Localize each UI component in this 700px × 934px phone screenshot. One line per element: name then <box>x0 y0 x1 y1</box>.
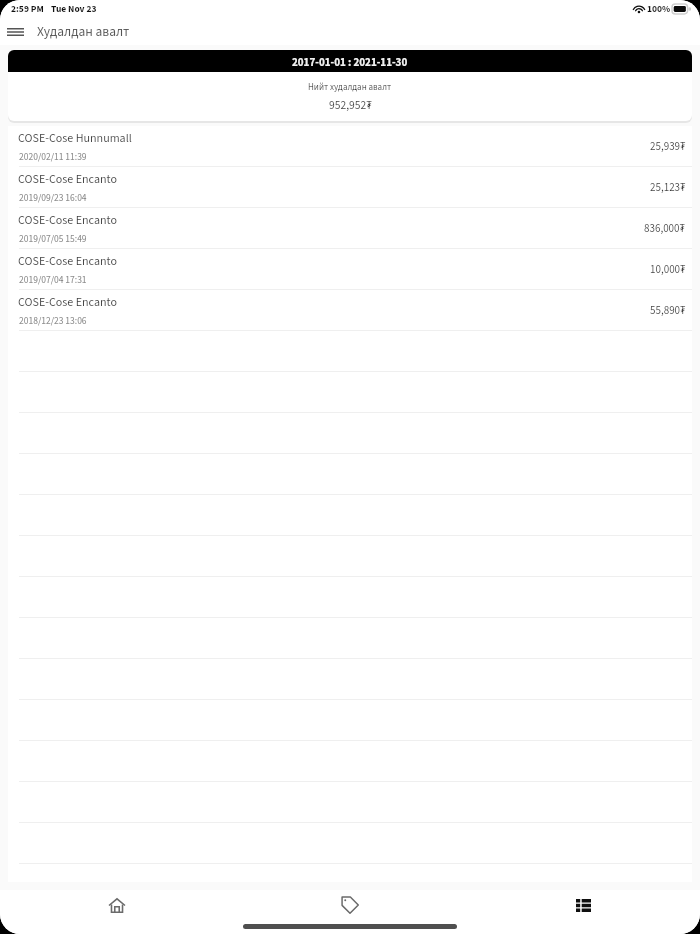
staticText: 2019/07/04 17:31 <box>19 273 87 287</box>
button[interactable]: Open navigation menu <box>0 18 30 45</box>
staticText: Tue Nov 23 <box>51 2 97 16</box>
staticText: COSE-Cose Encanto <box>18 212 117 229</box>
button[interactable]: COSE-Cose Encanto <box>8 249 692 290</box>
staticText: 25,123₮ <box>650 180 686 196</box>
staticText: 2020/02/11 11:39 <box>19 150 87 164</box>
staticText: Худалдан авалт <box>37 22 130 41</box>
staticText: 952,952₮ <box>329 97 372 113</box>
staticText: COSE-Cose Encanto <box>18 253 117 270</box>
button[interactable]: Transactions <box>467 890 700 920</box>
staticText: 25,939₮ <box>650 139 686 155</box>
staticText: 55,890₮ <box>650 303 686 319</box>
staticText: 10,000₮ <box>650 262 686 278</box>
staticText: COSE-Cose Encanto <box>18 294 117 311</box>
button[interactable]: COSE-Cose Hunnumall <box>8 126 692 167</box>
staticText: 100% <box>647 2 671 16</box>
staticText: 2018/12/23 13:06 <box>19 314 87 328</box>
button[interactable]: COSE-Cose Encanto <box>8 167 692 208</box>
staticText: 836,000₮ <box>644 221 686 237</box>
button[interactable]: COSE-Cose Encanto <box>8 208 692 249</box>
staticText: COSE-Cose Encanto <box>18 171 117 188</box>
staticText: 2017-01-01 : 2021-11-30 <box>292 55 408 71</box>
staticText: 2019/09/23 16:04 <box>19 191 87 205</box>
button[interactable]: Tags <box>234 890 467 920</box>
staticText: 2:59 PM <box>11 2 44 16</box>
button[interactable]: Home <box>0 890 234 920</box>
button[interactable]: COSE-Cose Encanto <box>8 290 692 331</box>
staticText: Нийт худалдан авалт <box>308 81 392 94</box>
staticText: COSE-Cose Hunnumall <box>18 130 132 147</box>
staticText: 2019/07/05 15:49 <box>19 232 87 246</box>
